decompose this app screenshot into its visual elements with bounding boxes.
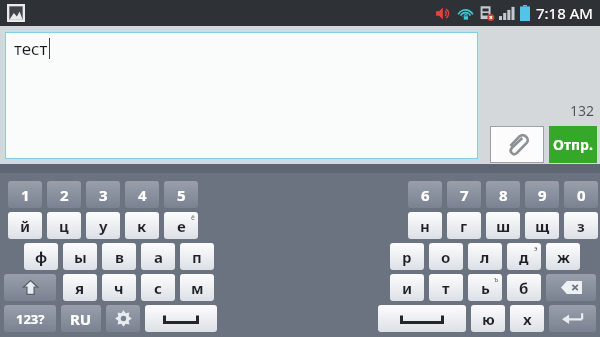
staticText: ф (35, 247, 48, 267)
button[interactable]: я (63, 274, 97, 301)
button[interactable]: о (429, 243, 463, 270)
button[interactable]: ц (47, 212, 81, 239)
staticText: 5 (177, 185, 186, 205)
staticText: ч (114, 278, 124, 298)
button[interactable]: Space (145, 305, 217, 332)
staticText: м (191, 278, 204, 298)
button[interactable]: ф (24, 243, 58, 270)
button[interactable]: х (510, 305, 544, 332)
staticText: ъ (494, 275, 499, 285)
button[interactable]: ш (486, 212, 520, 239)
staticText: 7:18 AM (536, 3, 593, 23)
button[interactable]: 5 (164, 181, 198, 208)
staticText: 2 (60, 185, 69, 205)
button[interactable]: к (125, 212, 159, 239)
button[interactable]: 9 (525, 181, 559, 208)
staticText: х (523, 309, 532, 329)
staticText: 123? (16, 310, 45, 328)
button[interactable]: ь (468, 274, 502, 301)
staticText: н (420, 216, 430, 236)
staticText: у (99, 216, 108, 236)
staticText: е (177, 216, 186, 236)
staticText: й (20, 216, 31, 236)
button[interactable]: ю (471, 305, 505, 332)
staticText: 9 (538, 185, 547, 205)
staticText: а (154, 247, 163, 267)
staticText: ц (59, 216, 69, 236)
button[interactable]: м (180, 274, 214, 301)
button[interactable]: н (408, 212, 442, 239)
button[interactable]: ы (63, 243, 97, 270)
button[interactable]: 4 (125, 181, 159, 208)
staticText: г (460, 216, 468, 236)
button[interactable]: 6 (408, 181, 442, 208)
staticText: 7 (460, 185, 469, 205)
staticText: э (534, 244, 538, 254)
staticText: ё (191, 213, 195, 223)
staticText: щ (535, 216, 550, 236)
staticText: 3 (99, 185, 108, 205)
staticText: л (480, 247, 490, 267)
button[interactable]: б (507, 274, 541, 301)
staticText: т (442, 278, 450, 298)
button[interactable]: с (141, 274, 175, 301)
staticText: о (441, 247, 451, 267)
button[interactable]: 8 (486, 181, 520, 208)
button[interactable]: й (8, 212, 42, 239)
button[interactable]: 1 (8, 181, 42, 208)
button[interactable]: п (180, 243, 214, 270)
button[interactable]: ж (546, 243, 580, 270)
staticText: тест (14, 37, 48, 60)
staticText: с (154, 278, 162, 298)
button[interactable]: тест (5, 32, 478, 159)
button[interactable]: Backspace (546, 274, 596, 301)
button[interactable]: 3 (86, 181, 120, 208)
button[interactable]: и (390, 274, 424, 301)
staticText: я (75, 278, 85, 298)
button[interactable]: г (447, 212, 481, 239)
button[interactable]: ч (102, 274, 136, 301)
button[interactable]: Отпр. (549, 126, 597, 163)
button[interactable]: е (164, 212, 198, 239)
staticText: п (192, 247, 202, 267)
button[interactable]: т (429, 274, 463, 301)
button[interactable]: у (86, 212, 120, 239)
button[interactable]: з (564, 212, 598, 239)
staticText: ж (557, 247, 570, 267)
staticText: з (577, 216, 585, 236)
staticText: 1 (21, 185, 30, 205)
staticText: д (519, 247, 529, 267)
button[interactable]: д (507, 243, 541, 270)
button[interactable]: а (141, 243, 175, 270)
staticText: Отпр. (553, 135, 593, 154)
button[interactable]: щ (525, 212, 559, 239)
staticText: р (402, 247, 412, 267)
button[interactable]: RU (61, 305, 101, 332)
button[interactable]: Keyboard settings (106, 305, 140, 332)
button[interactable]: 7 (447, 181, 481, 208)
button[interactable]: Enter (549, 305, 596, 332)
button[interactable]: Space (378, 305, 466, 332)
button[interactable]: Shift (4, 274, 56, 301)
staticText: 4 (138, 185, 147, 205)
button[interactable]: 2 (47, 181, 81, 208)
staticText: ы (74, 247, 87, 267)
button[interactable]: 123? (4, 305, 56, 332)
button[interactable]: л (468, 243, 502, 270)
button[interactable]: Attach file (491, 127, 543, 162)
button[interactable]: Gallery notification (7, 4, 25, 22)
staticText: к (137, 216, 147, 236)
staticText: ю (482, 309, 495, 329)
staticText: в (115, 247, 124, 267)
staticText: 8 (499, 185, 508, 205)
staticText: 132 (486, 101, 594, 120)
staticText: ш (496, 216, 511, 236)
staticText: б (519, 278, 529, 298)
staticText: и (402, 278, 413, 298)
staticText: 6 (421, 185, 430, 205)
button[interactable]: 0 (564, 181, 598, 208)
button[interactable]: в (102, 243, 136, 270)
staticText: 0 (577, 185, 586, 205)
button[interactable]: р (390, 243, 424, 270)
staticText: ь (481, 278, 490, 298)
